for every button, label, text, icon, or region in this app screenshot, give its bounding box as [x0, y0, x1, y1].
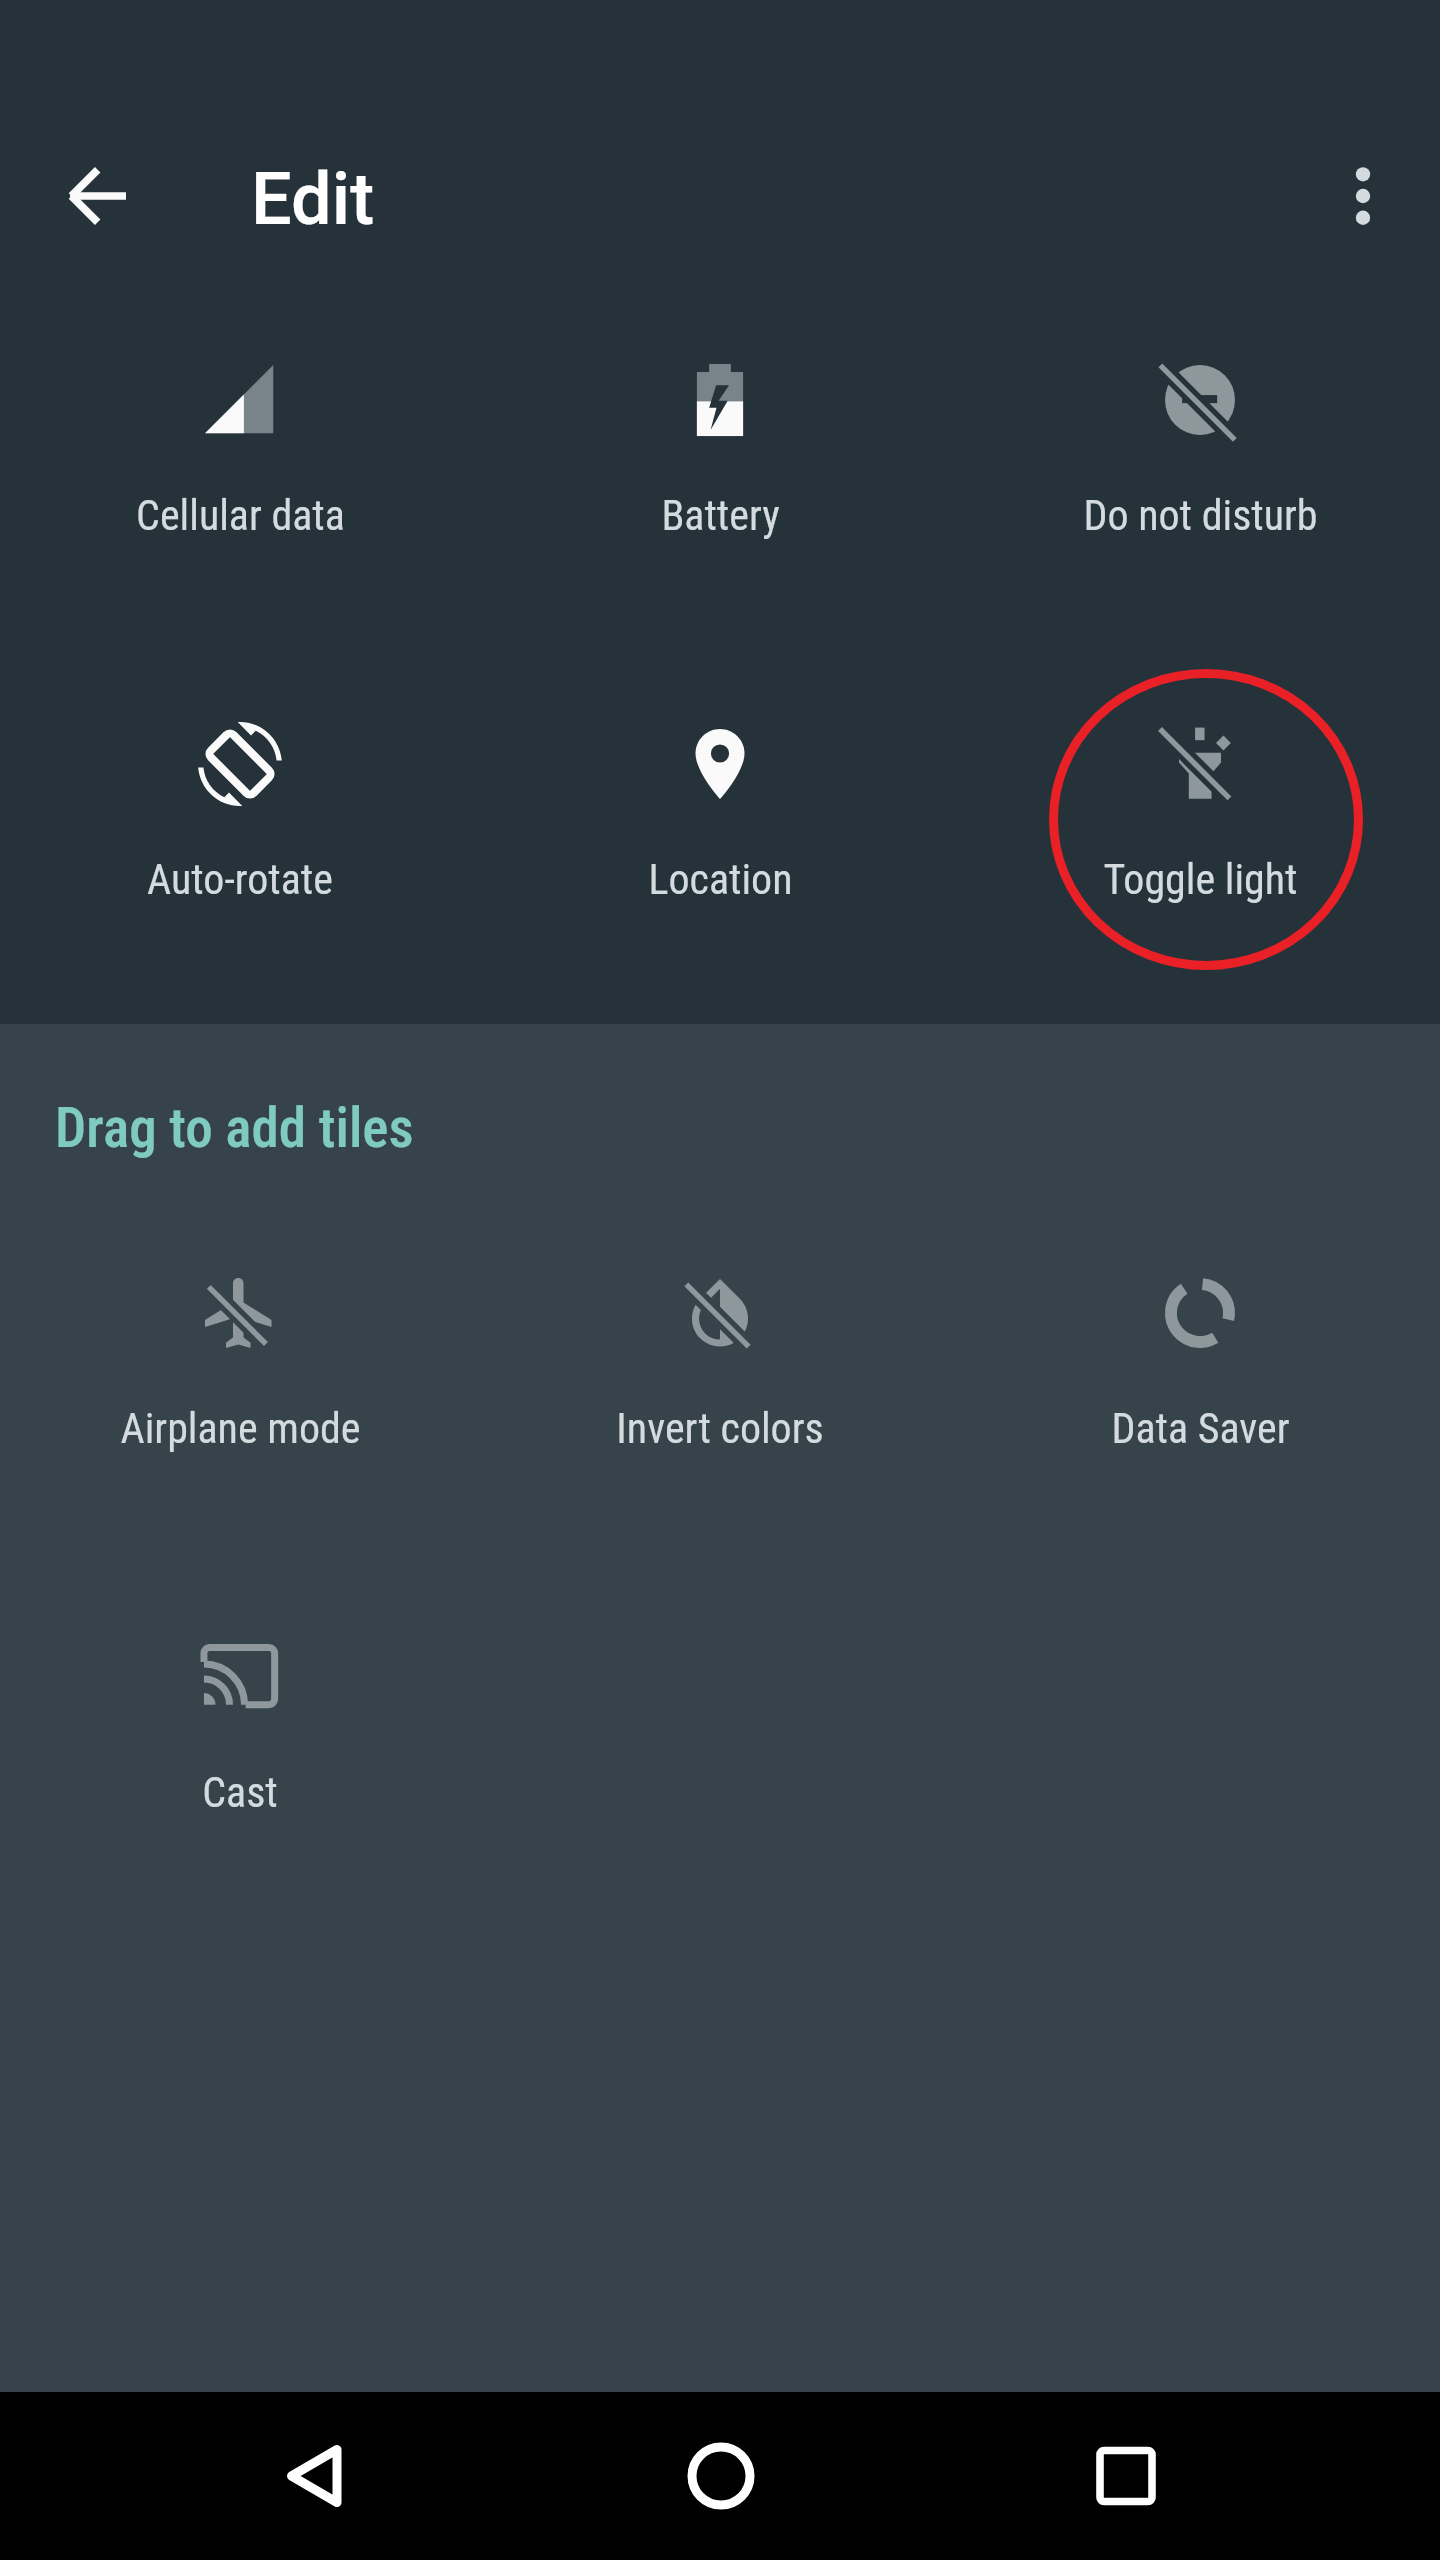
staticText: Cast: [202, 1768, 278, 1817]
button[interactable]: Cellular data: [0, 288, 480, 588]
staticText: Location: [648, 855, 793, 904]
staticText: Do not disturb: [1083, 491, 1318, 540]
button[interactable]: Cast: [0, 1565, 480, 1865]
staticText: Toggle light: [1103, 855, 1298, 904]
button[interactable]: Battery: [480, 288, 960, 588]
staticText: Invert colors: [616, 1404, 824, 1453]
staticText: Cellular data: [136, 491, 345, 540]
button[interactable]: Toggle light: [960, 652, 1440, 952]
button[interactable]: Location: [480, 652, 960, 952]
staticText: Data Saver: [1111, 1404, 1290, 1453]
button[interactable]: Auto-rotate: [0, 652, 480, 952]
button[interactable]: Invert colors: [480, 1201, 960, 1501]
button[interactable]: Back: [256, 2416, 376, 2536]
staticText: Auto-rotate: [147, 855, 333, 904]
button[interactable]: Navigate up: [56, 154, 140, 238]
button[interactable]: Airplane mode: [0, 1201, 480, 1501]
staticText: Edit: [251, 157, 375, 241]
button[interactable]: Do not disturb: [960, 288, 1440, 588]
button[interactable]: Home: [661, 2416, 781, 2536]
button[interactable]: Data Saver: [960, 1201, 1440, 1501]
button[interactable]: More options: [1321, 154, 1405, 238]
staticText: Drag to add tiles: [55, 1096, 414, 1160]
button[interactable]: Recent apps: [1066, 2416, 1186, 2536]
staticText: Battery: [661, 491, 780, 540]
staticText: Airplane mode: [120, 1404, 361, 1453]
